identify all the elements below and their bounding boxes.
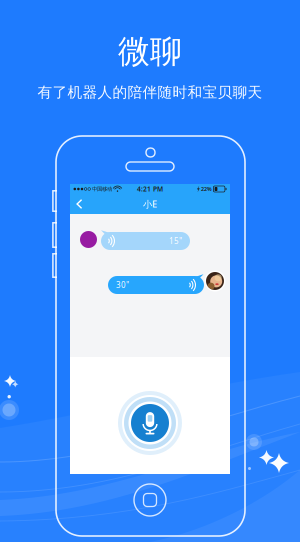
staticText: 22% — [201, 185, 212, 193]
button[interactable]: Back — [70, 194, 89, 214]
staticText: 15" — [169, 236, 182, 246]
staticText: 4:21 PM — [137, 185, 163, 193]
staticText: 微聊 — [118, 32, 182, 71]
staticText: 中国移动 — [92, 186, 112, 192]
button[interactable]: Hold to record voice message — [131, 404, 169, 442]
staticText: 30" — [116, 280, 129, 290]
staticText: 有了机器人的陪伴随时和宝贝聊天 — [37, 83, 262, 101]
staticText: 小E — [143, 198, 157, 210]
